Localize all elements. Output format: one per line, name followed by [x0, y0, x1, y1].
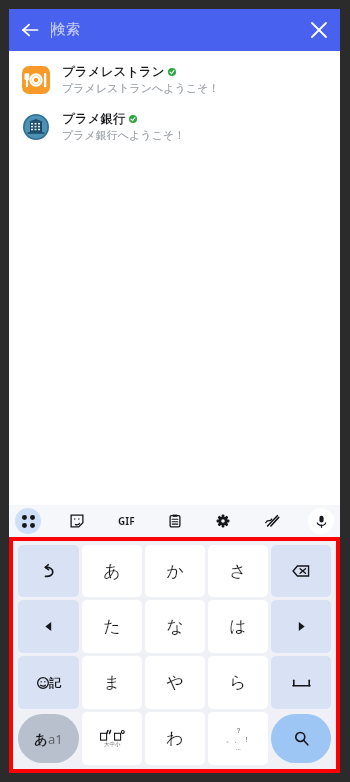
- staticText: …: [236, 744, 241, 752]
- button[interactable]: Key: [18, 545, 79, 597]
- button[interactable]: な: [145, 600, 205, 653]
- staticText: さ: [229, 561, 247, 582]
- staticText: ！: [243, 735, 250, 744]
- staticText: わ: [166, 728, 184, 749]
- button[interactable]: た: [82, 600, 142, 653]
- button[interactable]: Key: [18, 600, 79, 653]
- button[interactable]: Mode switch: [18, 714, 79, 763]
- button[interactable]: Stickers: [64, 508, 90, 534]
- button[interactable]: Key: [18, 656, 79, 709]
- button[interactable]: さ: [208, 545, 268, 597]
- staticText: ら: [229, 672, 247, 693]
- staticText: 。: [226, 735, 233, 744]
- button[interactable]: ま: [82, 656, 142, 709]
- button[interactable]: Key: [208, 712, 268, 765]
- button[interactable]: は: [208, 600, 268, 653]
- button[interactable]: ら: [208, 656, 268, 709]
- staticText: あ: [34, 731, 48, 747]
- staticText: 大中小: [104, 741, 121, 748]
- button[interactable]: Key: [271, 545, 331, 597]
- button[interactable]: Apps: [15, 508, 41, 534]
- staticText: プラメ銀行へようこそ！: [62, 128, 186, 142]
- staticText: な: [166, 616, 184, 637]
- button[interactable]: Clipboard: [162, 508, 188, 534]
- staticText: か: [166, 561, 184, 582]
- button[interactable]: Key: [271, 656, 331, 709]
- button[interactable]: Back: [9, 9, 51, 51]
- staticText: 検索: [52, 21, 80, 39]
- button[interactable]: Settings: [210, 508, 236, 534]
- button[interactable]: Key: [82, 712, 142, 765]
- staticText: プラメレストランへようこそ！: [62, 81, 220, 95]
- button[interactable]: わ: [145, 712, 205, 765]
- button[interactable]: Handwriting: [259, 508, 285, 534]
- staticText: 、: [234, 735, 241, 744]
- staticText: 記: [49, 675, 61, 690]
- staticText: た: [103, 616, 121, 637]
- button[interactable]: あ: [82, 545, 142, 597]
- button[interactable]: GIF: [113, 508, 139, 534]
- staticText: ？: [235, 726, 242, 735]
- button[interactable]: プラメ銀行: [9, 107, 340, 146]
- button[interactable]: Search: [271, 714, 331, 763]
- button[interactable]: か: [145, 545, 205, 597]
- button[interactable]: や: [145, 656, 205, 709]
- staticText: プラメ銀行: [62, 111, 126, 127]
- staticText: は: [229, 616, 247, 637]
- staticText: あ: [103, 561, 121, 582]
- staticText: や: [166, 672, 184, 693]
- button[interactable]: プラメレストラン: [9, 60, 340, 99]
- staticText: a1: [48, 730, 63, 748]
- button[interactable]: Key: [271, 600, 331, 653]
- staticText: GIF: [118, 514, 135, 528]
- button[interactable]: Voice input: [308, 508, 334, 534]
- staticText: ま: [103, 672, 121, 693]
- staticText: プラメレストラン: [62, 64, 165, 80]
- button[interactable]: Close: [298, 9, 340, 51]
